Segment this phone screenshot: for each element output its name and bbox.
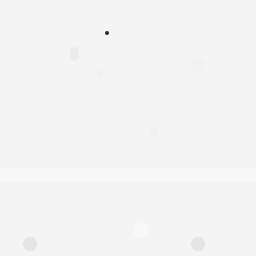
button[interactable]: Home bbox=[23, 237, 37, 251]
button[interactable]: Search bbox=[191, 237, 205, 251]
